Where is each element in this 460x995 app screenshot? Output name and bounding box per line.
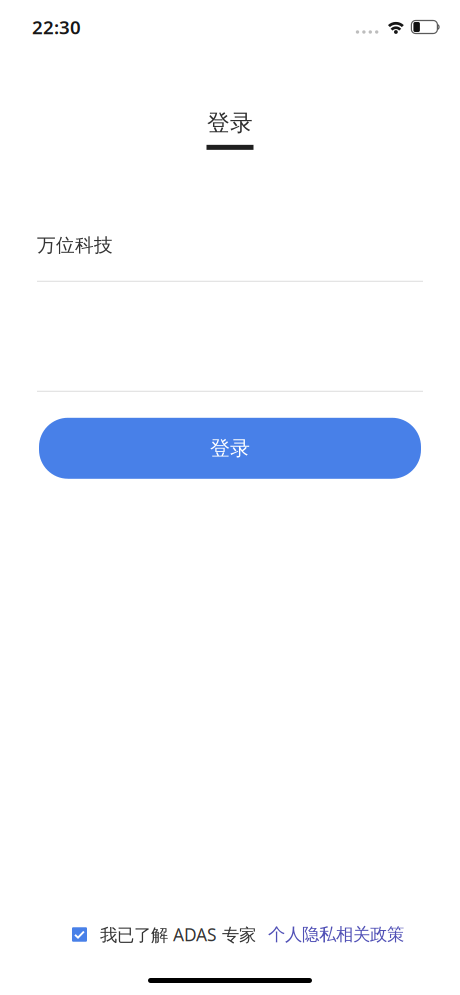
staticText: 个人隐私相关政策 <box>268 924 404 945</box>
button[interactable]: 我已了解 ADAS 专家 <box>72 923 256 946</box>
button[interactable]: 登录 <box>39 418 421 479</box>
staticText: 登录 <box>207 109 253 137</box>
button[interactable]: 万位科技 <box>37 234 423 282</box>
staticText: 万位科技 <box>37 234 113 257</box>
staticText: 登录 <box>210 436 250 461</box>
staticText: 22:30 <box>32 15 81 39</box>
staticText: 我已了解 ADAS 专家 <box>100 923 256 946</box>
button[interactable]: 个人隐私相关政策 <box>256 924 404 945</box>
